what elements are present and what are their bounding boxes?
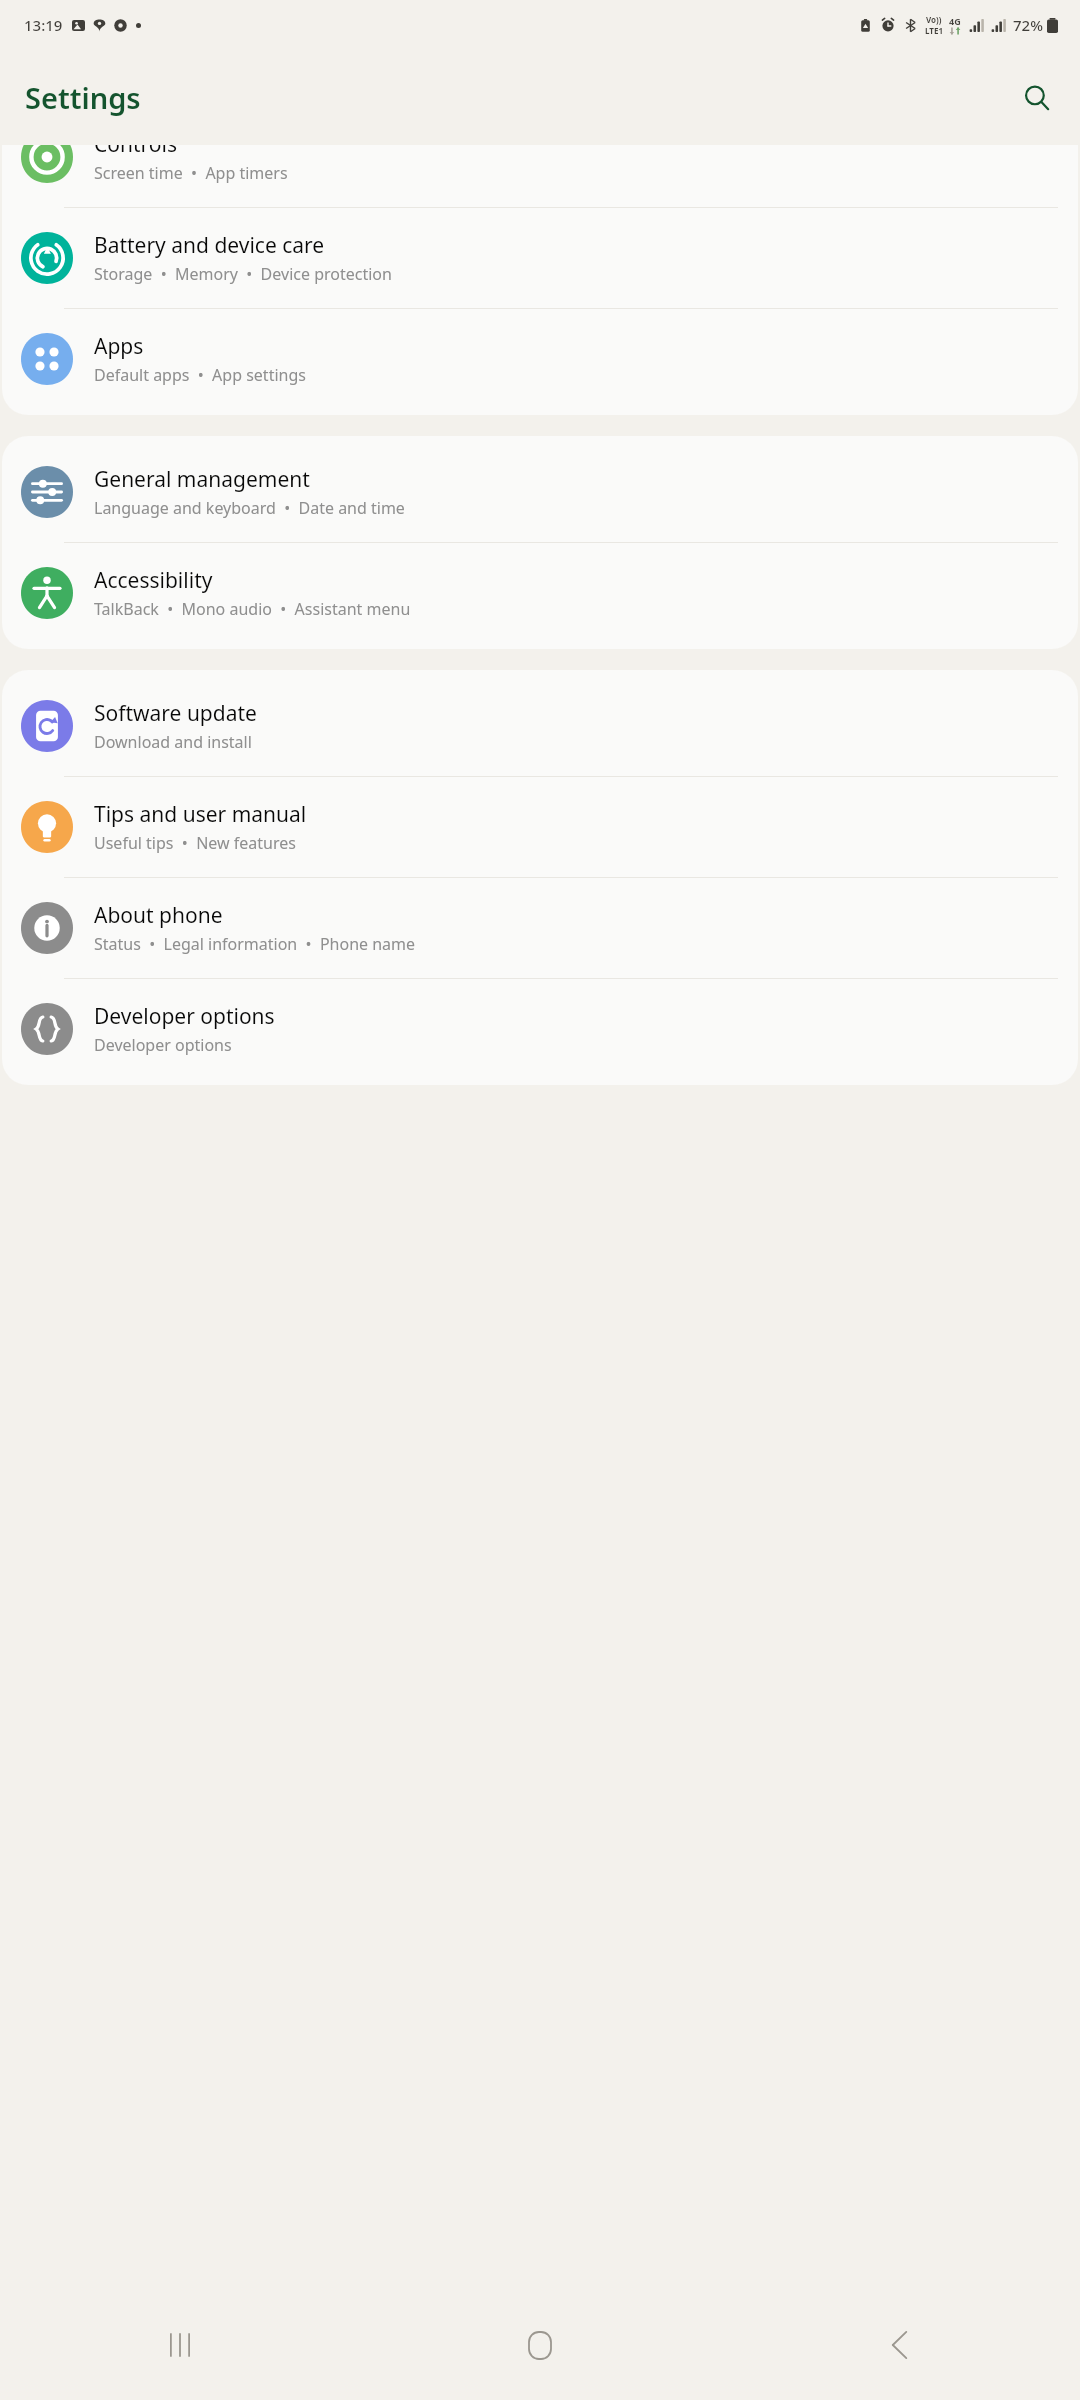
staticText: Controls — [94, 145, 177, 159]
staticText: Accessibility — [94, 566, 213, 595]
staticText: General management — [94, 465, 310, 494]
staticText: Useful tips • New features — [94, 832, 296, 854]
staticText: Vo)) — [926, 14, 942, 25]
button[interactable]: General management — [2, 442, 1078, 542]
staticText: Storage • Memory • Device protection — [94, 263, 392, 285]
staticText: About phone — [94, 901, 223, 930]
staticText: Developer options — [94, 1002, 275, 1031]
button[interactable]: Search — [1012, 73, 1062, 123]
staticText: Language and keyboard • Date and time — [94, 497, 405, 519]
staticText: Settings — [25, 78, 141, 117]
staticText: Download and install — [94, 731, 252, 753]
button[interactable]: Apps — [2, 309, 1078, 409]
staticText: LTE1 — [925, 25, 943, 36]
staticText: Software update — [94, 699, 257, 728]
button[interactable]: Accessibility — [2, 543, 1078, 643]
staticText: Default apps • App settings — [94, 364, 306, 386]
staticText: 13:19 — [24, 15, 63, 35]
staticText: Tips and user manual — [94, 800, 307, 829]
button[interactable]: Recents — [0, 2290, 360, 2400]
button[interactable]: Controls — [2, 145, 1078, 207]
staticText: 4G — [949, 15, 961, 27]
staticText: Screen time • App timers — [94, 162, 288, 184]
staticText: TalkBack • Mono audio • Assistant menu — [94, 598, 411, 620]
button[interactable]: Battery and device care — [2, 208, 1078, 308]
staticText: Battery and device care — [94, 231, 325, 260]
button[interactable]: Developer options — [2, 979, 1078, 1079]
button[interactable]: Home — [360, 2290, 720, 2400]
staticText: Status • Legal information • Phone name — [94, 933, 416, 955]
button[interactable]: Software update — [2, 676, 1078, 776]
button[interactable]: Tips and user manual — [2, 777, 1078, 877]
button[interactable]: About phone — [2, 878, 1078, 978]
staticText: Developer options — [94, 1034, 232, 1056]
staticText: 72% — [1013, 15, 1043, 35]
staticText: Apps — [94, 332, 144, 361]
button[interactable]: Back — [720, 2290, 1080, 2400]
